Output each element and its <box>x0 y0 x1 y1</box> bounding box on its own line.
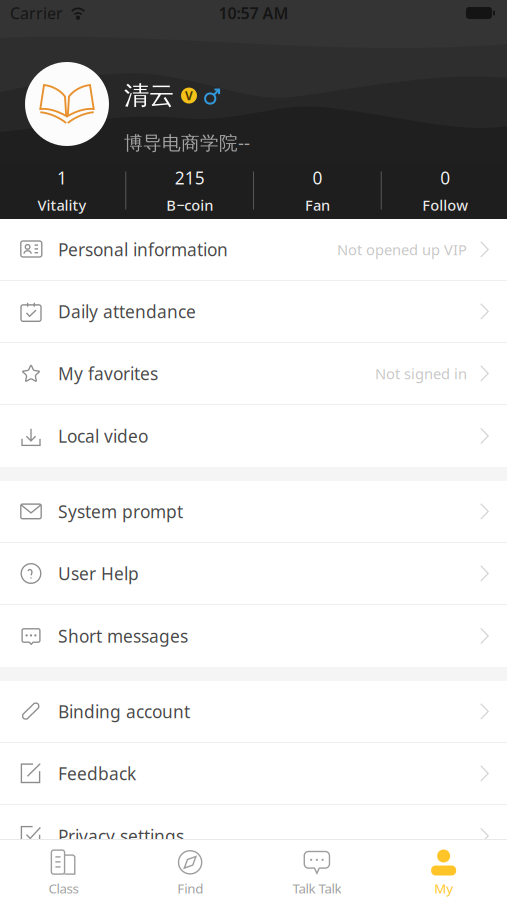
button[interactable]: Feedback <box>0 743 507 805</box>
staticText: Carrier <box>10 2 63 24</box>
staticText: 博导电商学院-- <box>124 130 250 155</box>
staticText: Feedback <box>58 762 136 785</box>
button[interactable]: 1 <box>0 162 125 219</box>
staticText: Not signed in <box>375 364 467 383</box>
staticText: 10:57 AM <box>218 2 288 24</box>
button[interactable]: 0 <box>254 162 381 219</box>
staticText: Local video <box>58 424 148 447</box>
button[interactable]: Personal information <box>0 219 507 281</box>
staticText: 0 <box>440 166 450 189</box>
button[interactable]: Daily attendance <box>0 281 507 343</box>
staticText: V <box>185 88 193 103</box>
staticText: Talk Talk <box>292 879 341 897</box>
staticText: 1 <box>57 166 67 189</box>
staticText: 清云 <box>124 80 174 111</box>
staticText: Vitality <box>37 195 86 215</box>
button[interactable]: My favorites <box>0 343 507 405</box>
staticText: Class <box>48 879 78 897</box>
staticText: 215 <box>175 166 205 189</box>
button[interactable]: User Help <box>0 543 507 605</box>
staticText: Daily attendance <box>58 300 196 323</box>
button[interactable]: Privacy settings <box>0 805 507 867</box>
staticText: 0 <box>312 166 322 189</box>
staticText: Fan <box>305 195 330 215</box>
button[interactable]: Talk Talk <box>253 839 380 900</box>
staticText: Find <box>177 879 203 897</box>
staticText: B−coin <box>166 195 213 215</box>
staticText: Follow <box>422 195 468 215</box>
button[interactable]: Find <box>127 839 254 900</box>
button[interactable]: System prompt <box>0 481 507 543</box>
button[interactable]: 0 <box>382 162 507 219</box>
staticText: Privacy settings <box>58 824 184 847</box>
staticText: Binding account <box>58 700 190 723</box>
button[interactable]: Binding account <box>0 681 507 743</box>
button[interactable]: Local video <box>0 405 507 467</box>
button[interactable]: My <box>380 839 507 900</box>
staticText: Not opened up VIP <box>337 240 467 259</box>
staticText: My <box>434 879 453 897</box>
button[interactable]: Short messages <box>0 605 507 667</box>
staticText: User Help <box>58 562 139 585</box>
staticText: Personal information <box>58 238 228 261</box>
staticText: Short messages <box>58 624 188 647</box>
button[interactable]: Class <box>0 839 127 900</box>
staticText: System prompt <box>58 500 183 523</box>
staticText: My favorites <box>58 362 158 385</box>
button[interactable]: 215 <box>126 162 253 219</box>
